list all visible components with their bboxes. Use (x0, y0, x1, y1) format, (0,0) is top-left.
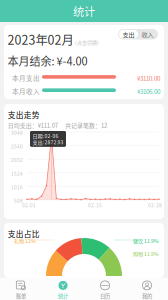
staticText: ¥3106.00 (137, 87, 160, 95)
staticText: 统计 (58, 293, 68, 299)
staticText: 02-15 (88, 202, 102, 208)
button[interactable]: 统计 (42, 278, 84, 300)
staticText: 日历 (100, 293, 110, 299)
staticText: 统计 (73, 5, 95, 17)
staticText: 支出: 2872.93 (32, 139, 63, 145)
staticText: 支出占比 (8, 229, 40, 239)
staticText: 日期: 02-06 (32, 133, 58, 138)
button[interactable]: 支出 (119, 30, 138, 38)
staticText: 本月收入 (12, 87, 40, 96)
staticText: 02-28 (148, 202, 162, 208)
staticText: 礼物 12% (14, 238, 36, 243)
staticText: 购物 11.9% (133, 251, 159, 256)
staticText: 3048 (11, 130, 23, 135)
staticText: ¥3110.00 (137, 74, 160, 82)
button[interactable]: 我的 (126, 278, 168, 300)
staticText: 支出走势 (8, 110, 40, 120)
staticText: 02-01 (22, 202, 36, 208)
button[interactable]: 2023年02月 (7, 33, 99, 46)
staticText: 日均支出：¥111.07 (8, 121, 58, 129)
button[interactable]: 日历 (84, 278, 126, 300)
button[interactable]: 账单 (0, 278, 42, 300)
staticText: 本月支出 (12, 73, 40, 82)
staticText: 收入 (141, 31, 153, 38)
button[interactable]: 收入 (138, 30, 157, 38)
staticText: 1016 (11, 185, 23, 190)
staticText: 共记录笔数：12 (65, 121, 107, 129)
staticText: 支出 (122, 31, 134, 38)
staticText: 2540 (11, 144, 23, 149)
staticText: 2023年02月 (7, 33, 73, 46)
staticText: 我的 (142, 293, 152, 299)
staticText: 账单 (16, 293, 26, 299)
staticText: (点击切换) (75, 39, 99, 45)
staticText: 餐饮 11.9% (133, 238, 159, 243)
staticText: 2032 (11, 157, 23, 162)
staticText: 1524 (11, 171, 23, 176)
staticText: 508 (14, 198, 23, 203)
staticText: 本月结余: ¥-4.00 (7, 55, 87, 67)
